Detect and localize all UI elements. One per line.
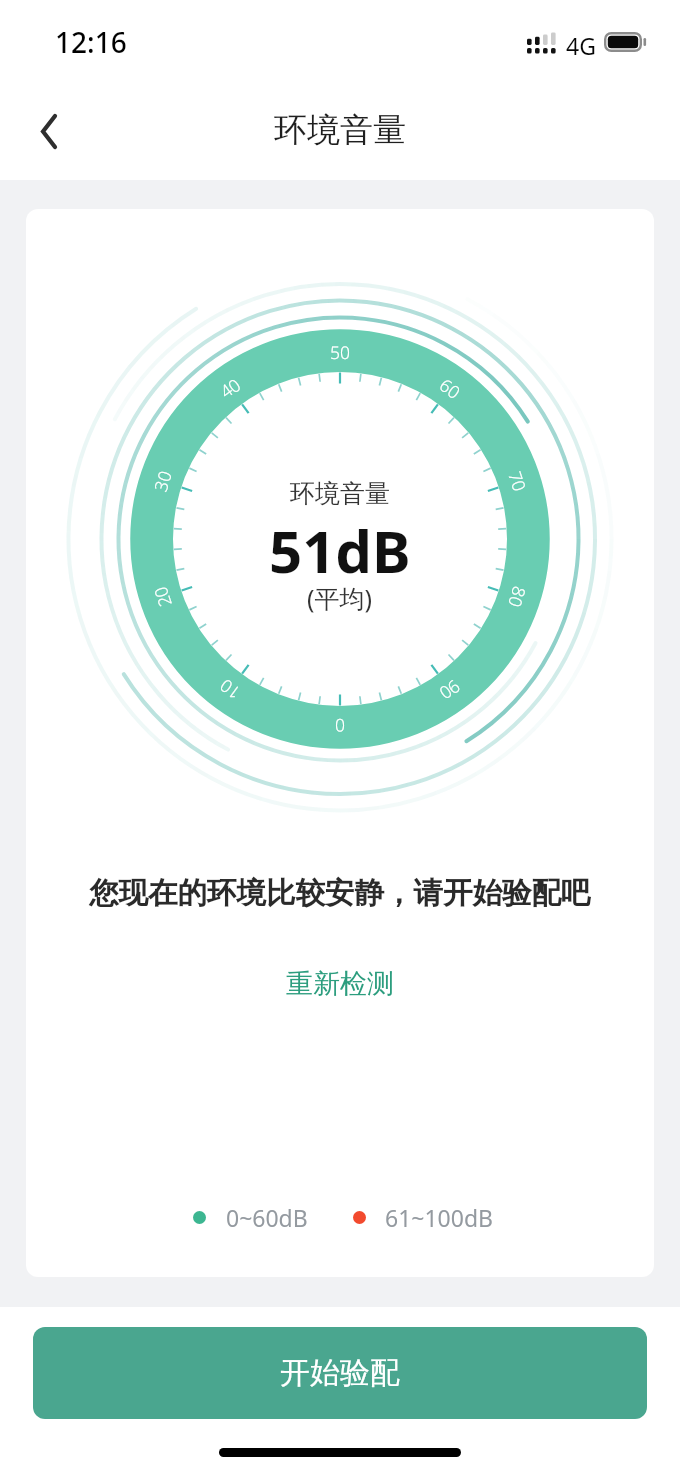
staticText: 重新检测 [286,967,394,1001]
staticText: 12:16 [55,23,127,61]
staticText: 51dB [269,511,411,590]
staticText: 您现在的环境比较安静，请开始验配吧 [89,875,591,912]
staticText: 0~60dB [226,1202,308,1233]
button[interactable]: 重新检测 [266,959,414,1009]
staticText: 61~100dB [385,1202,494,1233]
staticText: (平均) [307,581,373,615]
staticText: 环境音量 [274,109,406,151]
button[interactable]: 开始验配 [33,1327,647,1419]
staticText: 环境音量 [290,478,390,509]
staticText: 4G [566,30,596,61]
staticText: 开始验配 [280,1354,400,1392]
button[interactable]: Back [12,95,84,167]
